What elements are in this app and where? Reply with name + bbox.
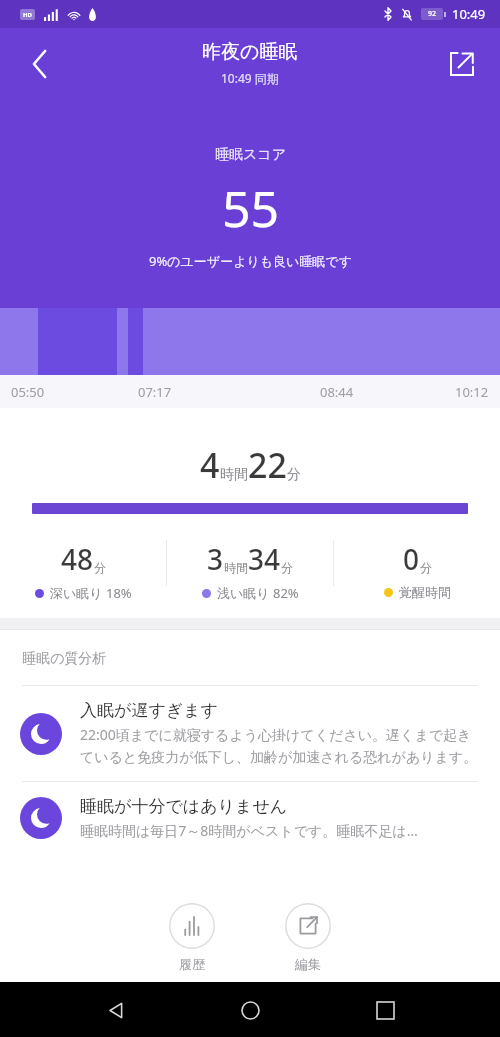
staticText: 時間: [224, 560, 248, 575]
button[interactable]: 睡眠が十分ではありません: [0, 782, 500, 854]
staticText: 4: [200, 442, 220, 488]
staticText: 深い眠り 18%: [50, 584, 132, 602]
button[interactable]: Back: [95, 990, 135, 1030]
staticText: 浅い眠り 82%: [217, 584, 299, 602]
staticText: 34: [248, 540, 281, 578]
staticText: 10:49: [452, 5, 486, 23]
button[interactable]: 入眠が遅すぎます: [0, 686, 500, 781]
staticText: 睡眠が十分ではありません: [80, 796, 288, 817]
staticText: 履歴: [179, 956, 205, 972]
staticText: 分: [420, 560, 432, 575]
staticText: 0: [403, 540, 420, 578]
staticText: 92: [428, 9, 437, 19]
button[interactable]: Back: [16, 40, 64, 88]
staticText: 10:49 同期: [221, 70, 279, 86]
button[interactable]: History: [163, 897, 221, 978]
button[interactable]: Edit: [279, 897, 337, 978]
staticText: 55: [222, 174, 280, 242]
staticText: 08:44: [320, 383, 354, 401]
staticText: 編集: [295, 956, 321, 972]
staticText: 22:00頃までに就寝するよう心掛けてください。遅くまで起きていると免疫力が低下…: [80, 725, 478, 767]
button[interactable]: Recents: [365, 990, 405, 1030]
staticText: 睡眠の質分析: [22, 650, 107, 668]
staticText: 睡眠時間は毎日7～8時間がベストです。睡眠不足は…: [80, 821, 418, 840]
staticText: 分: [287, 466, 301, 484]
staticText: 3: [207, 540, 224, 578]
staticText: 07:17: [138, 383, 172, 401]
staticText: 05:50: [11, 383, 45, 401]
staticText: 昨夜の睡眠: [202, 40, 298, 64]
button[interactable]: Share: [438, 40, 486, 88]
staticText: 睡眠スコア: [215, 146, 286, 164]
staticText: 22: [248, 442, 287, 488]
staticText: 9%のユーザーよりも良い睡眠です: [149, 252, 352, 270]
staticText: 覚醒時間: [399, 584, 451, 600]
staticText: 分: [94, 560, 106, 575]
staticText: 分: [281, 560, 293, 575]
staticText: 入眠が遅すぎます: [80, 700, 218, 721]
staticText: 10:12: [455, 383, 489, 401]
staticText: 48: [61, 540, 94, 578]
staticText: 時間: [220, 466, 248, 484]
button[interactable]: Home: [230, 990, 270, 1030]
staticText: HD: [23, 11, 32, 19]
